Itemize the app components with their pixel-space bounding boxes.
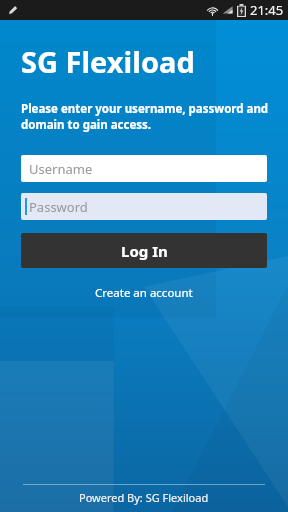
other: Edit <box>6 4 19 17</box>
staticText: Please enter your username, password and… <box>21 101 269 132</box>
button[interactable]: Username <box>21 155 267 182</box>
staticText: SG Flexiload <box>21 42 195 81</box>
button[interactable]: Create an account <box>87 282 201 304</box>
staticText: Powered By: SG Flexiload <box>79 490 209 505</box>
button[interactable]: Log In <box>21 233 267 268</box>
staticText: Username <box>29 160 93 178</box>
staticText: 21:45 <box>250 1 284 19</box>
staticText: Password <box>29 198 88 216</box>
staticText: Create an account <box>95 285 193 301</box>
staticText: Log In <box>121 241 168 261</box>
button[interactable]: Password <box>21 193 267 220</box>
